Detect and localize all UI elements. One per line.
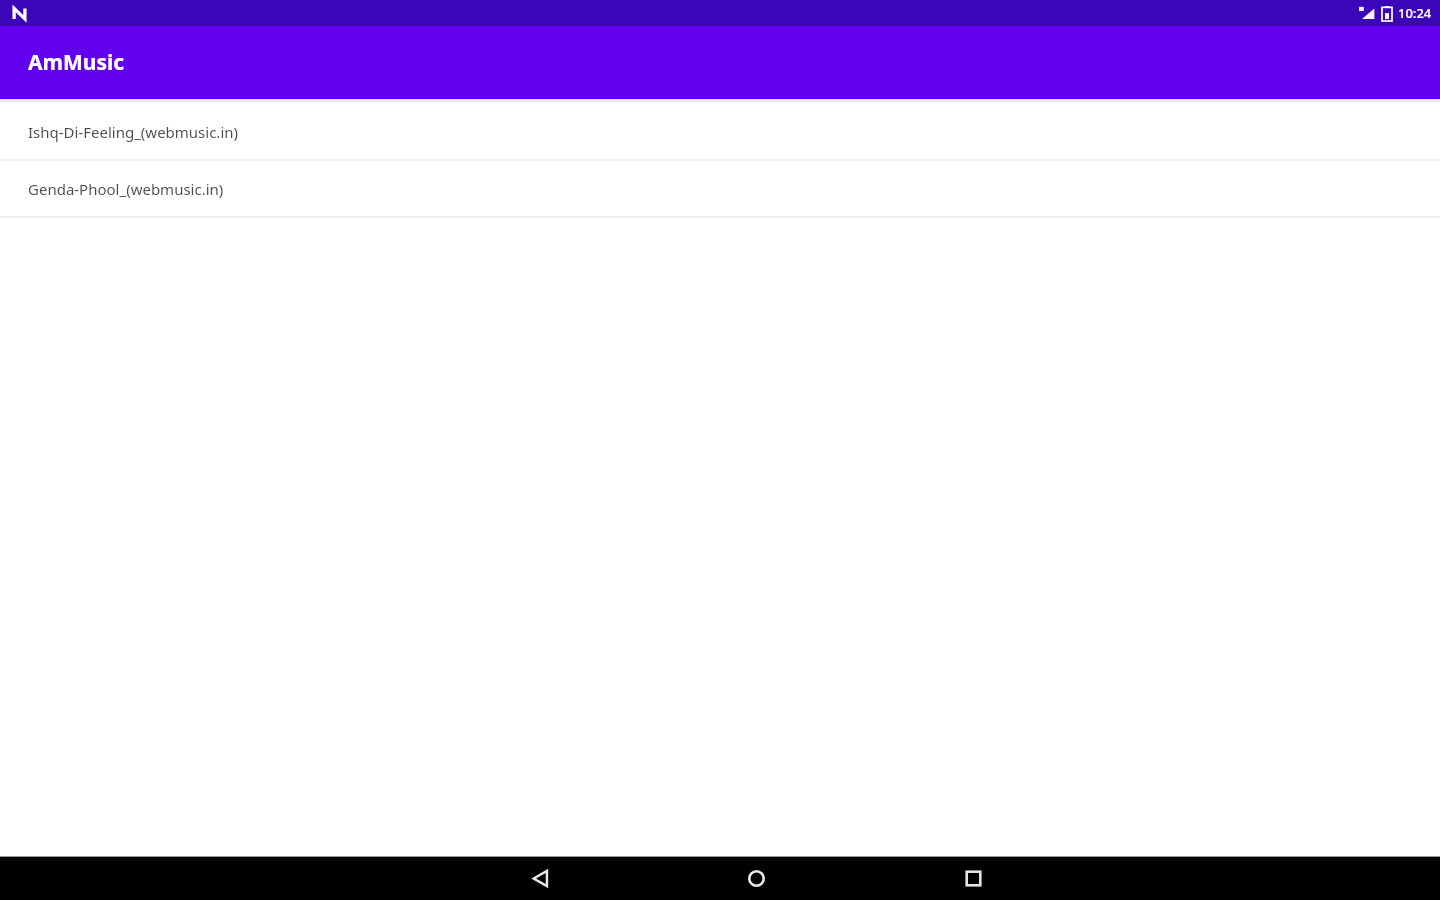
staticText: AmMusic — [28, 48, 125, 77]
button[interactable]: Recent apps — [937, 857, 1009, 900]
button[interactable]: Genda-Phool_(webmusic.in) — [0, 161, 1440, 216]
button[interactable]: Back — [504, 857, 576, 900]
staticText: 10:24 — [1398, 4, 1432, 22]
button[interactable]: Home — [720, 857, 792, 900]
staticText: Ishq-Di-Feeling_(webmusic.in) — [28, 122, 239, 142]
staticText: Genda-Phool_(webmusic.in) — [28, 179, 224, 199]
button[interactable]: Ishq-Di-Feeling_(webmusic.in) — [0, 104, 1440, 159]
